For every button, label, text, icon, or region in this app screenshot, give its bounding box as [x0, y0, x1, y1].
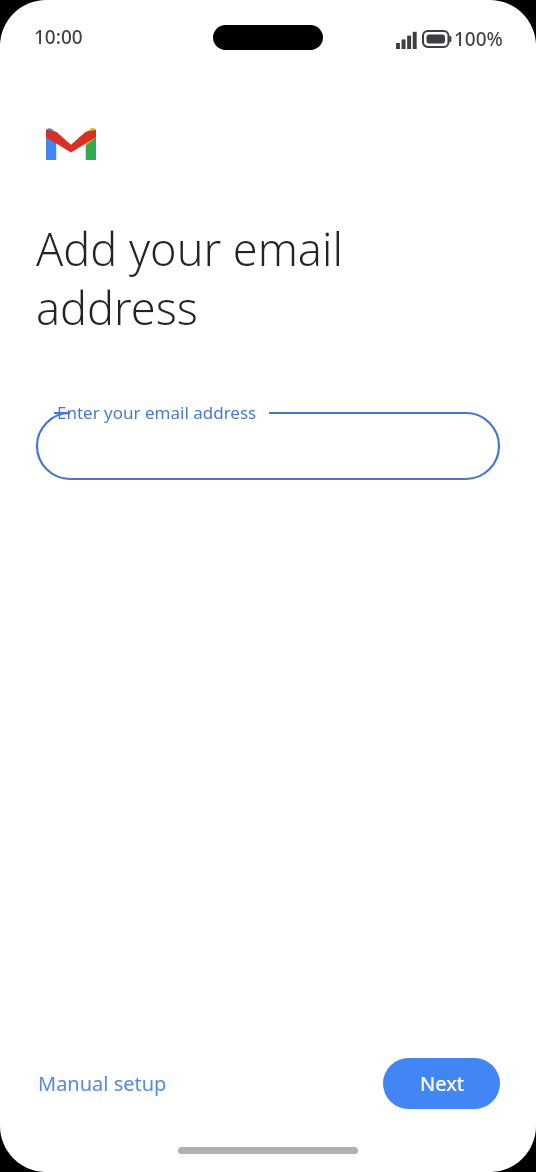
staticText: 100%: [454, 26, 503, 52]
staticText: 10:00: [34, 24, 83, 50]
button[interactable]: Next: [383, 1058, 500, 1109]
button[interactable]: Enter your email address: [36, 400, 500, 492]
staticText: Next: [420, 1070, 464, 1097]
staticText: Add your email address: [36, 218, 343, 338]
staticText: Manual setup: [38, 1070, 167, 1097]
button[interactable]: Manual setup: [36, 1062, 169, 1105]
staticText: Enter your email address: [57, 401, 257, 424]
